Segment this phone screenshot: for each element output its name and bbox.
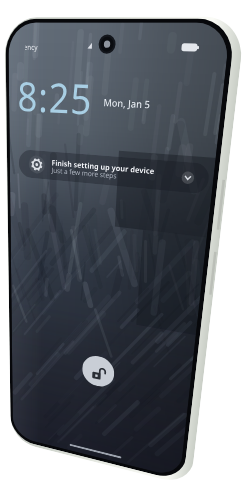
button[interactable]: Finish setting up your device (19, 149, 210, 194)
staticText: 8:25 (17, 68, 94, 127)
button[interactable]: Unlock (82, 353, 115, 389)
staticText: Emergency calls only (25, 41, 52, 53)
staticText: Mon, Jan 5 (103, 96, 151, 112)
staticText: Finish setting up your device (52, 157, 155, 176)
staticText: Just a few more steps (51, 165, 117, 181)
